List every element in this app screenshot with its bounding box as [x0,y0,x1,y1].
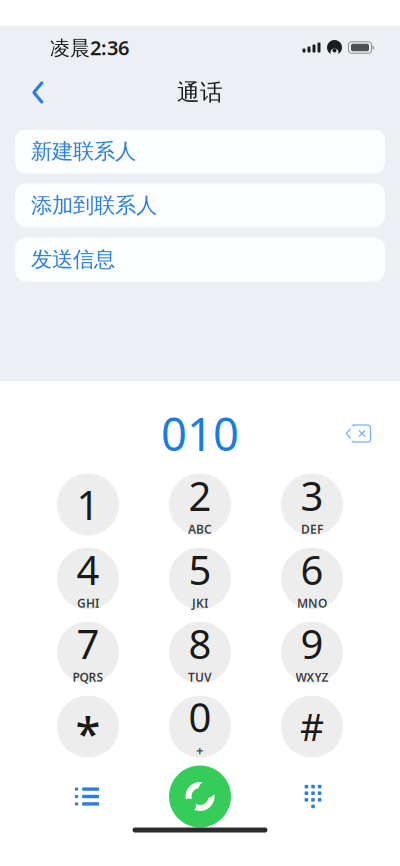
staticText: 010 [161,403,239,464]
button[interactable]: 拨号 [169,765,231,827]
button[interactable]: 新建联系人 [15,129,385,173]
button[interactable]: 7 [57,621,119,683]
staticText: JKI [192,595,208,611]
staticText: 添加到联系人 [31,192,157,219]
button[interactable]: 返回 [16,70,60,114]
staticText: 4 [76,543,99,596]
button[interactable]: # [281,695,343,757]
staticText: 7 [76,617,99,670]
staticText: 凌晨2:36 [50,34,129,61]
staticText: TUV [188,669,212,685]
staticText: 3 [300,469,323,522]
staticText: 通话 [177,79,223,106]
button[interactable]: 0 [169,695,231,757]
staticText: MNO [297,595,327,611]
staticText: DEF [301,521,323,537]
button[interactable]: 9 [281,621,343,683]
staticText: * [75,702,100,763]
staticText: GHI [77,595,99,611]
staticText: 9 [300,617,323,670]
button[interactable]: 删除 [332,411,382,455]
staticText: 新建联系人 [31,138,136,165]
staticText: 6 [300,543,323,596]
button[interactable]: 6 [281,547,343,609]
staticText: # [300,702,324,751]
button[interactable]: 4 [57,547,119,609]
staticText: 1 [76,478,99,531]
staticText: PQRS [72,669,103,685]
staticText: WXYZ [295,669,328,685]
button[interactable]: 2 [169,473,231,535]
button[interactable]: 1 [57,473,119,535]
staticText: 8 [188,617,211,670]
staticText: + [196,741,204,759]
button[interactable]: 发送信息 [15,237,385,281]
button[interactable]: 5 [169,547,231,609]
button[interactable]: 通话记录 [56,765,118,827]
button[interactable]: 3 [281,473,343,535]
staticText: 2 [188,469,211,522]
button[interactable]: * [57,695,119,757]
button[interactable]: 8 [169,621,231,683]
staticText: 5 [188,543,211,596]
staticText: 发送信息 [31,246,115,273]
staticText: ABC [188,521,212,537]
button[interactable]: 键盘 [282,765,344,827]
staticText: 0 [188,690,211,743]
button[interactable]: 添加到联系人 [15,183,385,227]
